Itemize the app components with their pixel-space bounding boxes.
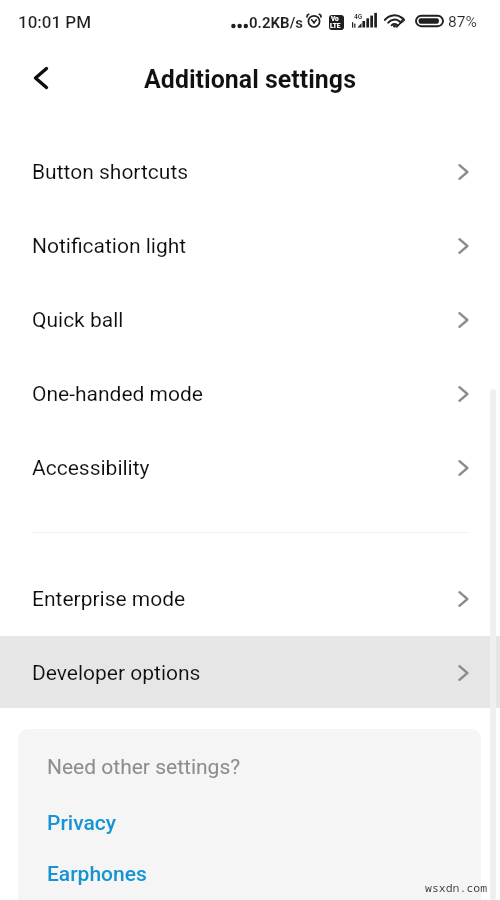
- staticText: 87%: [448, 13, 477, 31]
- button[interactable]: One-handed mode: [0, 357, 500, 431]
- staticText: 10:01 PM: [18, 12, 92, 32]
- staticText: Button shortcuts: [32, 160, 189, 185]
- button[interactable]: Enterprise mode: [0, 562, 500, 636]
- staticText: Enterprise mode: [32, 587, 186, 612]
- staticText: Earphones: [47, 862, 147, 887]
- staticText: Need other settings?: [47, 755, 241, 780]
- staticText: LTE: [330, 22, 341, 30]
- button[interactable]: Button shortcuts: [0, 135, 500, 209]
- staticText: Accessibility: [32, 456, 150, 481]
- staticText: 0.2KB/s: [249, 14, 303, 32]
- staticText: Additional settings: [144, 65, 356, 94]
- button[interactable]: Quick ball: [0, 283, 500, 357]
- staticText: Quick ball: [32, 308, 124, 333]
- button[interactable]: Accessibility: [0, 431, 500, 505]
- staticText: Privacy: [47, 811, 117, 836]
- button[interactable]: Privacy: [18, 798, 481, 849]
- staticText: Developer options: [32, 661, 201, 686]
- staticText: Vo: [331, 15, 339, 23]
- button[interactable]: Earphones: [18, 849, 481, 900]
- staticText: wsxdn.com: [425, 880, 488, 896]
- button[interactable]: Developer options: [0, 636, 500, 710]
- staticText: One-handed mode: [32, 382, 203, 407]
- staticText: 4G: [354, 13, 363, 21]
- button[interactable]: Back: [14, 51, 68, 105]
- button[interactable]: Notification light: [0, 209, 500, 283]
- staticText: Notification light: [32, 234, 187, 259]
